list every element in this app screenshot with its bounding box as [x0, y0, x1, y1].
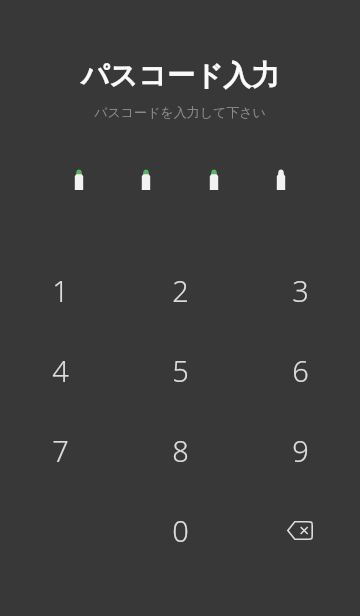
- button[interactable]: Delete: [240, 490, 360, 570]
- button[interactable]: 7: [0, 410, 120, 490]
- staticText: 2: [172, 271, 189, 310]
- button[interactable]: 5: [120, 330, 240, 410]
- staticText: パスコード入力: [0, 58, 360, 93]
- button[interactable]: 8: [120, 410, 240, 490]
- staticText: 5: [172, 351, 189, 390]
- button[interactable]: 9: [240, 410, 360, 490]
- button[interactable]: 3: [240, 250, 360, 330]
- button[interactable]: 1: [0, 250, 120, 330]
- button[interactable]: 4: [0, 330, 120, 410]
- staticText: 7: [52, 431, 69, 470]
- staticText: 9: [292, 431, 309, 470]
- staticText: 3: [292, 271, 309, 310]
- staticText: 1: [52, 271, 69, 310]
- button[interactable]: 0: [120, 490, 240, 570]
- staticText: 4: [52, 351, 69, 390]
- button[interactable]: 2: [120, 250, 240, 330]
- staticText: 6: [292, 351, 309, 390]
- staticText: パスコードを入力して下さい: [0, 104, 360, 120]
- staticText: 8: [172, 431, 189, 470]
- staticText: 0: [172, 511, 189, 550]
- button[interactable]: 6: [240, 330, 360, 410]
